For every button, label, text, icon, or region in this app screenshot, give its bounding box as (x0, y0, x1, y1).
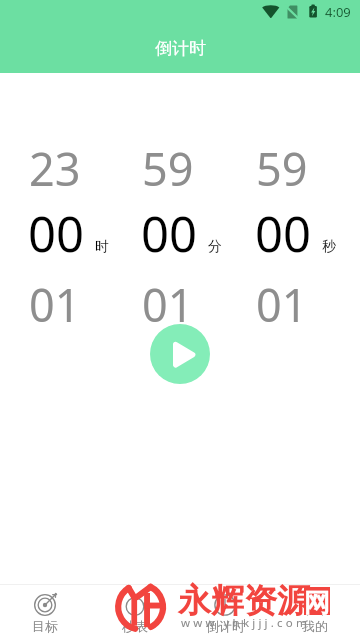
staticText: 01 (142, 274, 194, 335)
staticText: 01 (29, 274, 81, 335)
button[interactable]: 倒计时 (180, 585, 270, 640)
staticText: 23 (29, 138, 81, 199)
staticText: 01 (256, 274, 308, 335)
staticText: 00 (255, 200, 312, 267)
staticText: 时 (95, 238, 109, 256)
button[interactable]: 我的 (270, 585, 360, 640)
staticText: 秒表 (122, 618, 148, 634)
staticText: 倒计时 (155, 38, 206, 59)
staticText: 00 (28, 200, 85, 267)
staticText: 网 (304, 587, 330, 615)
staticText: 秒 (322, 238, 336, 256)
button[interactable]: Start countdown (150, 324, 210, 384)
staticText: www.yhkjjj.com (181, 615, 359, 631)
staticText: 目标 (32, 618, 58, 634)
staticText: 永辉资源 (178, 580, 310, 622)
staticText: 00 (141, 200, 198, 267)
staticText: 59 (256, 138, 308, 199)
staticText: 我的 (302, 618, 328, 634)
button[interactable]: 秒表 (90, 585, 180, 640)
staticText: 倒计时 (206, 618, 245, 634)
staticText: 59 (142, 138, 194, 199)
staticText: 分 (208, 238, 222, 256)
staticText: 4:09 (325, 3, 351, 21)
button[interactable]: 目标 (0, 585, 90, 640)
